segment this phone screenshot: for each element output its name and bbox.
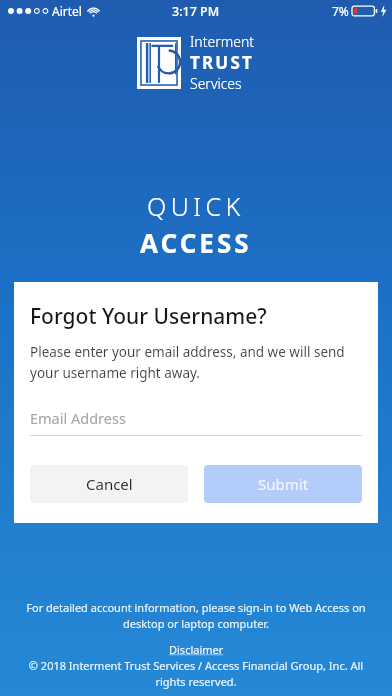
staticText: 7% [332,3,349,19]
other: Interment Trust Services logo [137,37,181,89]
staticText: For detailed account information, please… [24,600,368,632]
staticText: © 2018 Interment Trust Services / Access… [24,658,368,690]
staticText: 3:17 PM [172,3,220,20]
staticText: Email Address [30,408,126,428]
button[interactable]: Submit [204,465,362,503]
staticText: Interment [190,32,255,51]
staticText: Forgot Your Username? [30,302,267,331]
staticText: ACCESS [140,225,252,260]
staticText: Please enter your email address, and we … [30,343,362,382]
staticText: Cancel [86,474,133,494]
staticText: Disclaimer [169,642,224,657]
staticText: TRUST [190,51,254,74]
staticText: QUICK [147,189,245,223]
button[interactable]: Cancel [30,465,188,503]
button[interactable]: Disclaimer [169,642,224,657]
button[interactable]: Email Address [30,408,362,436]
staticText: Submit [258,474,309,494]
staticText: Services [190,74,242,93]
staticText: Airtel [52,3,82,19]
